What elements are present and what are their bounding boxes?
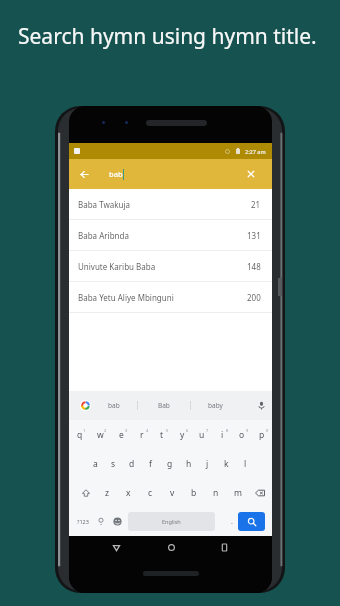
staticText: .	[231, 517, 233, 527]
button[interactable]: Period	[226, 512, 238, 531]
staticText: z	[105, 487, 109, 499]
staticText: 1	[83, 428, 86, 433]
button[interactable]: ?123	[72, 512, 93, 531]
staticText: 3	[125, 428, 128, 433]
button[interactable]: f	[141, 449, 160, 478]
staticText: q	[77, 429, 83, 441]
staticText: 148	[247, 261, 261, 272]
staticText: Baba Twakuja	[78, 199, 131, 210]
staticText: Search hymn using hymn title.	[18, 22, 317, 51]
staticText: g	[167, 458, 173, 470]
button[interactable]: e	[111, 420, 132, 449]
staticText: 2:27 am	[245, 148, 266, 155]
button[interactable]: y	[172, 420, 192, 449]
button[interactable]: p	[252, 420, 272, 449]
staticText: u	[199, 429, 205, 441]
button[interactable]: q	[69, 420, 90, 449]
staticText: b	[191, 487, 197, 499]
button[interactable]: Emoji	[109, 512, 125, 531]
button[interactable]: Bab	[138, 391, 190, 420]
staticText: Univute Karibu Baba	[78, 261, 156, 272]
staticText: c	[148, 487, 153, 499]
button[interactable]: Home	[165, 541, 177, 553]
staticText: h	[186, 458, 192, 470]
staticText: 21	[251, 199, 261, 210]
button[interactable]: v	[161, 478, 183, 507]
button[interactable]: l	[236, 449, 255, 478]
staticText: 9	[246, 428, 249, 433]
staticText: 5	[166, 428, 169, 433]
button[interactable]: Recent apps	[218, 541, 230, 553]
staticText: f	[149, 458, 152, 470]
button[interactable]: Back	[69, 159, 99, 189]
button[interactable]: English	[128, 512, 215, 531]
button[interactable]: c	[139, 478, 161, 507]
staticText: 7	[206, 428, 209, 433]
staticText: 8	[226, 428, 229, 433]
button[interactable]: s	[104, 449, 122, 478]
staticText: s	[111, 458, 116, 470]
staticText: m	[234, 487, 242, 499]
button[interactable]: k	[217, 449, 236, 478]
button[interactable]: j	[198, 449, 217, 478]
staticText: English	[162, 518, 181, 525]
staticText: j	[206, 458, 209, 470]
staticText: x	[126, 487, 131, 499]
button[interactable]: g	[160, 449, 179, 478]
staticText: 131	[247, 230, 261, 241]
button[interactable]: d	[122, 449, 141, 478]
button[interactable]: Back	[110, 541, 122, 553]
button[interactable]: bab	[91, 391, 137, 420]
staticText: n	[213, 487, 219, 499]
button[interactable]: a	[86, 449, 104, 478]
staticText: t	[160, 429, 164, 441]
button[interactable]: r	[132, 420, 152, 449]
button[interactable]: t	[152, 420, 172, 449]
staticText: a	[93, 458, 98, 470]
staticText: bab	[109, 169, 123, 179]
staticText: y	[180, 429, 185, 441]
button[interactable]: w	[90, 420, 111, 449]
button[interactable]: o	[232, 420, 252, 449]
button[interactable]: Shift	[75, 478, 96, 507]
staticText: Baba Yetu Aliye Mbinguni	[78, 292, 174, 303]
button[interactable]: b	[183, 478, 205, 507]
staticText: 0	[266, 428, 269, 433]
staticText: 2	[104, 428, 107, 433]
button[interactable]: m	[227, 478, 249, 507]
button[interactable]: h	[179, 449, 198, 478]
button[interactable]: u	[192, 420, 212, 449]
button[interactable]: i	[212, 420, 232, 449]
button[interactable]: Clear search	[238, 159, 264, 189]
button[interactable]: Voice input	[250, 391, 272, 420]
staticText: e	[119, 429, 124, 441]
button[interactable]: baby	[191, 391, 239, 420]
staticText: k	[224, 458, 229, 470]
staticText: 200	[247, 292, 261, 303]
button[interactable]: Search	[238, 512, 265, 531]
button[interactable]: Baba Twakuja	[69, 189, 272, 219]
staticText: ?123	[77, 518, 89, 525]
staticText: 6	[186, 428, 189, 433]
button[interactable]: x	[117, 478, 139, 507]
staticText: d	[129, 458, 135, 470]
staticText: 4	[146, 428, 149, 433]
staticText: Bab	[158, 401, 170, 410]
button[interactable]: Baba Yetu Aliye Mbinguni	[69, 282, 272, 312]
staticText: baby	[208, 401, 223, 410]
staticText: l	[244, 458, 247, 470]
button[interactable]: Backspace	[249, 478, 270, 507]
button[interactable]: Comma	[93, 512, 109, 531]
staticText: i	[221, 429, 224, 441]
staticText: v	[170, 487, 175, 499]
staticText: p	[259, 429, 265, 441]
staticText: o	[239, 429, 245, 441]
button[interactable]: z	[96, 478, 117, 507]
staticText: r	[140, 429, 144, 441]
staticText: bab	[108, 401, 120, 410]
staticText: Baba Aribnda	[78, 230, 129, 241]
button[interactable]: n	[205, 478, 227, 507]
button[interactable]: Univute Karibu Baba	[69, 251, 272, 281]
staticText: w	[97, 429, 104, 441]
button[interactable]: Baba Aribnda	[69, 220, 272, 250]
